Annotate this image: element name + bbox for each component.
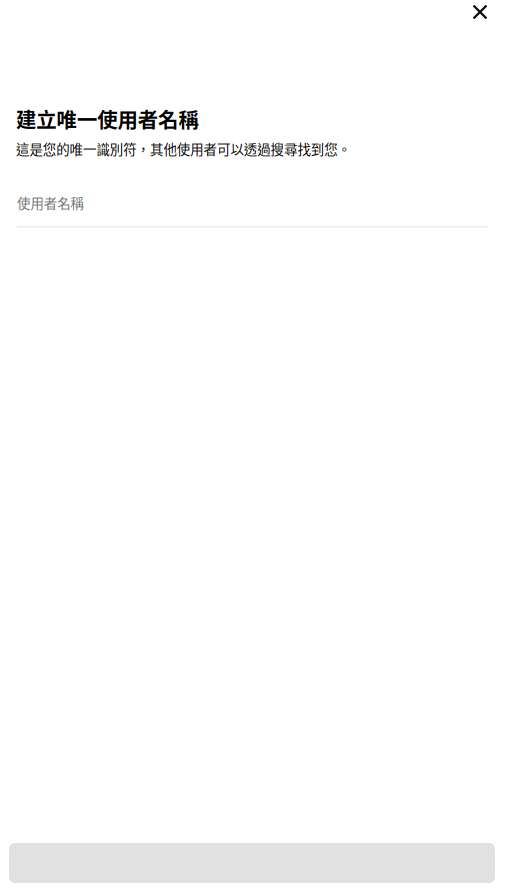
button[interactable]: Close — [465, 0, 495, 26]
staticText: 建立唯一使用者名稱 — [16, 104, 198, 133]
staticText: 使用者名稱 — [17, 193, 84, 212]
staticText: 這是您的唯一識別符，其他使用者可以透過搜尋找到您。 — [16, 139, 351, 158]
button[interactable]: 使用者名稱 — [17, 193, 488, 228]
